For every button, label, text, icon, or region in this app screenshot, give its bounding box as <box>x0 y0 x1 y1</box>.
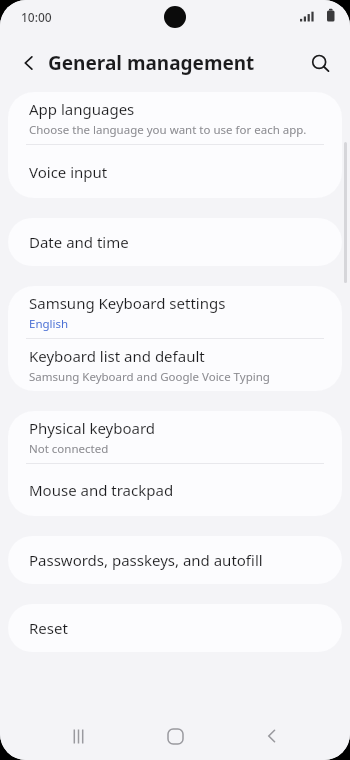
staticText: Date and time <box>29 232 129 252</box>
staticText: General management <box>48 50 255 76</box>
staticText: English <box>29 316 69 332</box>
button[interactable]: Recent apps <box>60 718 96 754</box>
staticText: Not connected <box>29 441 109 457</box>
button[interactable]: Search <box>303 46 337 80</box>
button[interactable]: Passwords, passkeys, and autofill <box>8 536 342 584</box>
staticText: Keyboard list and default <box>29 346 205 366</box>
button[interactable]: Samsung Keyboard settings <box>8 286 342 338</box>
button[interactable]: Reset <box>8 604 342 652</box>
button[interactable]: Physical keyboard <box>8 411 342 463</box>
staticText: Reset <box>29 618 68 638</box>
staticText: App languages <box>29 99 135 119</box>
staticText: Samsung Keyboard and Google Voice Typing <box>29 369 270 385</box>
staticText: 10:00 <box>21 9 52 25</box>
button[interactable]: Home <box>157 718 193 754</box>
staticText: Samsung Keyboard settings <box>29 293 226 313</box>
staticText: Physical keyboard <box>29 418 156 438</box>
staticText: Passwords, passkeys, and autofill <box>29 550 263 570</box>
button[interactable]: Back <box>254 718 290 754</box>
button[interactable]: Back <box>12 46 46 80</box>
button[interactable]: Keyboard list and default <box>8 339 342 391</box>
staticText: Mouse and trackpad <box>29 480 174 500</box>
button[interactable]: App languages <box>8 92 342 144</box>
button[interactable]: Date and time <box>8 218 342 266</box>
button[interactable]: Mouse and trackpad <box>8 464 342 516</box>
staticText: Voice input <box>29 162 108 182</box>
staticText: Choose the language you want to use for … <box>29 122 307 138</box>
button[interactable]: Voice input <box>8 145 342 198</box>
